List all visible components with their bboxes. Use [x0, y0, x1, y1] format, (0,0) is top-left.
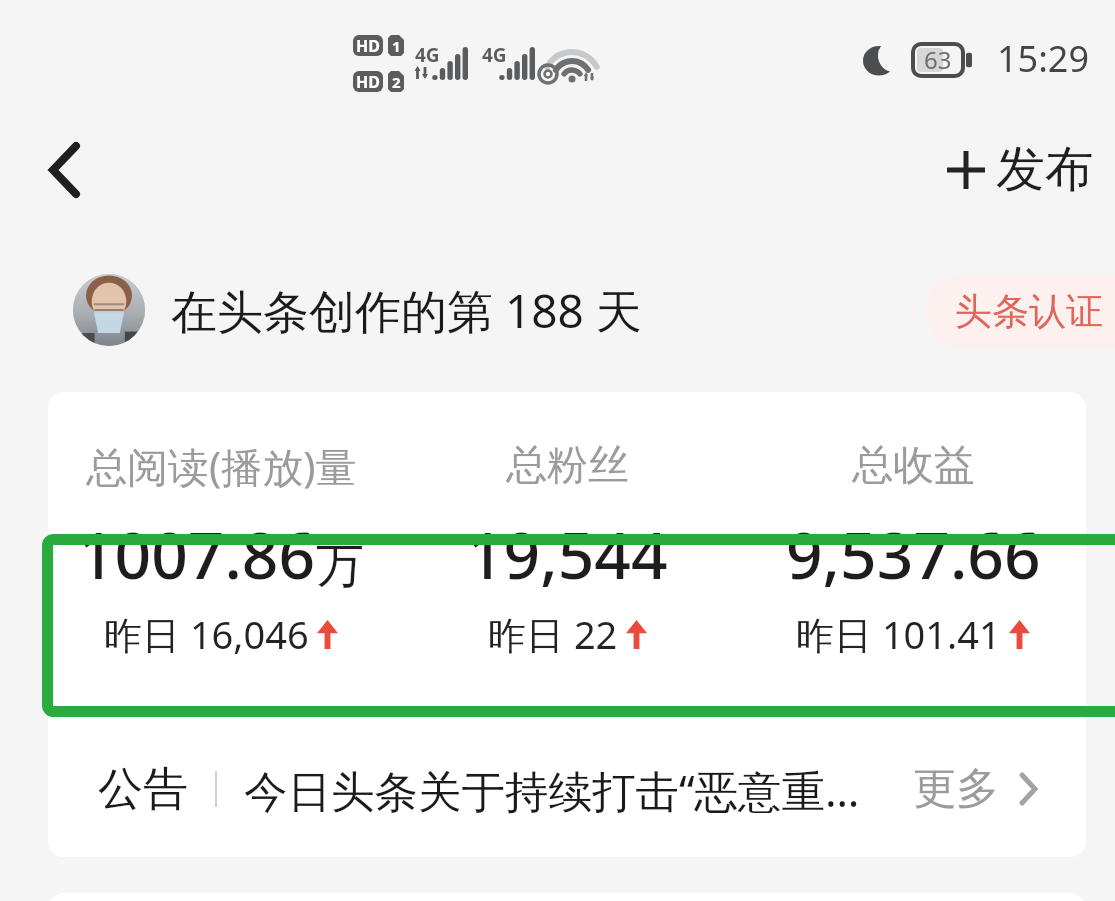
button[interactable]: 公告	[48, 729, 1086, 849]
staticText: 总收益	[852, 440, 975, 492]
staticText: 万	[316, 536, 364, 596]
staticText: 头条认证	[955, 288, 1103, 335]
staticText: 昨日 16,046	[104, 608, 309, 660]
staticText: 昨日 101.41	[796, 608, 1001, 660]
staticText: 更多	[913, 762, 999, 816]
staticText: 1	[392, 36, 401, 56]
staticText: 总粉丝	[506, 440, 629, 492]
staticText: 2	[392, 72, 401, 92]
staticText: 公告	[98, 761, 188, 818]
staticText: 9,537.66	[786, 511, 1041, 598]
staticText: 昨日 22	[488, 608, 618, 660]
staticText: 4G	[415, 42, 440, 68]
button[interactable]: 发布 Publish	[939, 128, 1102, 212]
button[interactable]: 在头条创作的第 188 天	[0, 266, 642, 354]
staticText: 在头条创作的第 188 天	[171, 279, 642, 342]
staticText: 1007.86	[78, 511, 316, 598]
staticText: 4G	[482, 42, 507, 68]
staticText: HD	[356, 71, 380, 92]
button[interactable]: Back	[28, 134, 100, 206]
staticText: 15:29	[997, 34, 1090, 83]
staticText: 63	[924, 43, 952, 76]
staticText: HD	[356, 35, 380, 56]
staticText: 发布	[996, 139, 1094, 201]
staticText: 19,544	[467, 511, 668, 598]
staticText: 总阅读(播放)量	[86, 438, 357, 494]
staticText: 今日头条关于持续打击“恶意重…	[244, 760, 860, 819]
button[interactable]: 头条认证	[926, 274, 1115, 349]
